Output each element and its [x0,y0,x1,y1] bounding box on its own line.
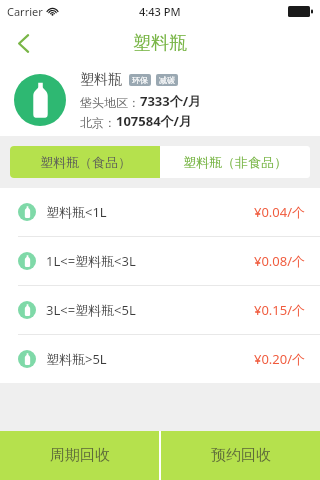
staticText: 塑料瓶>5L [46,350,107,368]
staticText: 3L<=塑料瓶<5L [46,301,136,319]
staticText: 塑料瓶（非食品） [183,154,287,170]
staticText: 107584个/月 [116,112,193,130]
staticText: 预约回收 [211,446,271,465]
staticText: ¥0.08/个 [254,252,306,270]
staticText: ¥0.20/个 [254,350,306,368]
staticText: 塑料瓶 [133,32,187,55]
staticText: ¥0.04/个 [254,203,306,221]
button[interactable]: 塑料瓶（非食品） [160,146,310,178]
button[interactable]: 塑料瓶>5L [0,335,320,383]
staticText: 塑料瓶 [80,71,122,89]
staticText: 北京： [80,115,116,130]
staticText: 塑料瓶（食品） [40,154,131,170]
button[interactable]: 1L<=塑料瓶<3L [0,237,320,285]
button[interactable]: 塑料瓶（食品） [10,146,160,178]
button[interactable]: 塑料瓶<1L [0,188,320,236]
staticText: 塑料瓶<1L [46,203,107,221]
button[interactable]: 预约回收 [161,431,320,480]
staticText: 减碳 [159,75,175,85]
staticText: 4:43 PM [139,4,181,19]
staticText: 垡头地区： [80,95,140,110]
staticText: Carrier [7,4,43,19]
staticText: 周期回收 [50,446,110,465]
staticText: 环保 [132,75,148,85]
button[interactable]: 周期回收 [0,431,159,480]
button[interactable]: 3L<=塑料瓶<5L [0,286,320,334]
staticText: ¥0.15/个 [254,301,306,319]
staticText: 1L<=塑料瓶<3L [46,252,136,270]
staticText: 7333个/月 [140,92,202,110]
button[interactable]: Back [0,22,46,64]
